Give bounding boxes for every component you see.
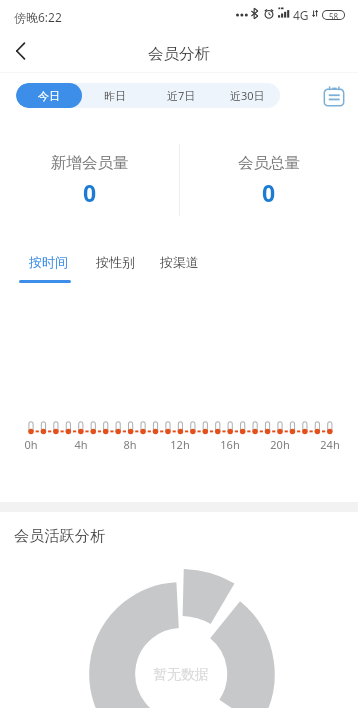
- staticText: 会员分析: [148, 44, 210, 64]
- staticText: 24h: [314, 437, 346, 452]
- staticText: 16h: [214, 437, 246, 452]
- staticText: 近30日: [230, 88, 265, 103]
- button[interactable]: 昨日: [82, 83, 148, 108]
- button[interactable]: 今日: [16, 83, 82, 108]
- staticText: 昨日: [104, 89, 126, 103]
- staticText: 4G: [293, 7, 309, 23]
- button[interactable]: 近7日: [148, 83, 214, 108]
- staticText: 0h: [15, 437, 47, 452]
- staticText: 傍晚6:22: [14, 9, 62, 25]
- button[interactable]: 按性别: [86, 249, 144, 287]
- staticText: 新增会员量: [51, 153, 129, 173]
- staticText: 20h: [264, 437, 296, 452]
- staticText: 4h: [65, 437, 97, 452]
- staticText: 暂无数据: [153, 666, 209, 684]
- button[interactable]: 按时间: [19, 249, 77, 287]
- button[interactable]: 近30日: [214, 83, 280, 108]
- staticText: 58: [329, 11, 339, 19]
- button[interactable]: 按渠道: [150, 249, 208, 287]
- staticText: 按性别: [96, 254, 135, 270]
- button[interactable]: Back: [0, 30, 40, 72]
- staticText: 12h: [164, 437, 196, 452]
- staticText: 会员活跃分析: [14, 526, 106, 545]
- staticText: 今日: [38, 89, 60, 103]
- staticText: 会员总量: [238, 153, 300, 173]
- staticText: 8h: [114, 437, 146, 452]
- staticText: 按时间: [29, 254, 68, 270]
- staticText: 近7日: [167, 88, 196, 103]
- button[interactable]: Report: [319, 82, 348, 111]
- staticText: 0: [83, 177, 97, 208]
- staticText: 0: [262, 177, 276, 208]
- staticText: 按渠道: [160, 254, 199, 270]
